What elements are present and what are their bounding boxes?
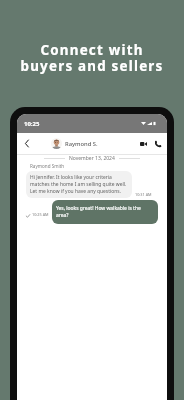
- button[interactable]: Call: [151, 137, 164, 150]
- staticText: 10:25 AM: [32, 212, 49, 217]
- staticText: Yes, looks great! How walkable is the ar…: [56, 205, 141, 219]
- staticText: Connect with buyers and sellers: [0, 41, 184, 75]
- button[interactable]: Video call: [137, 137, 150, 150]
- staticText: Raymond S.: [65, 140, 98, 148]
- staticText: November 13, 2024: [69, 155, 115, 162]
- staticText: Hi Jennifer. It looks like your criteria…: [30, 174, 127, 195]
- staticText: 10:25: [24, 120, 40, 128]
- staticText: Raymond Smith: [30, 163, 65, 169]
- button[interactable]: Back: [21, 138, 32, 149]
- staticText: 10:31 AM: [135, 192, 152, 197]
